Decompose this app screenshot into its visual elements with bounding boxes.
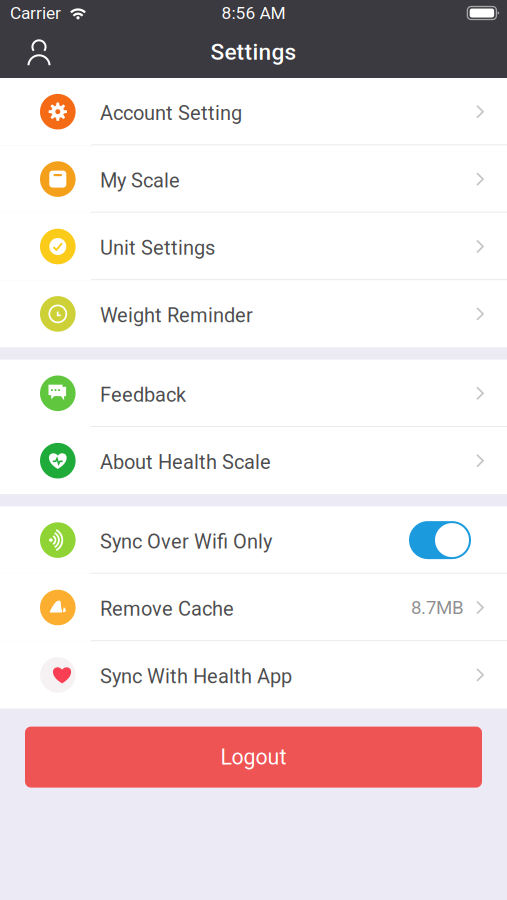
staticText: Sync With Health App [100,665,292,688]
button[interactable]: Profile [16,29,62,75]
button[interactable]: About Health Scale [0,427,507,494]
staticText: Feedback [100,383,186,406]
staticText: Logout [220,745,286,770]
staticText: Account Setting [100,101,242,125]
button[interactable]: Sync With Health App [0,641,507,709]
button[interactable]: My Scale [0,145,507,213]
staticText: Unit Settings [100,236,215,260]
staticText: Carrier [10,3,61,23]
staticText: 8:56 AM [221,3,285,23]
button[interactable]: Logout [25,727,482,788]
staticText: Remove Cache [100,597,234,621]
staticText: Weight Reminder [100,304,253,327]
button[interactable]: Weight Reminder [0,280,507,348]
staticText: About Health Scale [100,450,271,474]
button[interactable]: Unit Settings [0,213,507,280]
staticText: Settings [210,39,296,65]
staticText: Sync Over Wifi Only [100,530,272,553]
button[interactable]: Account Setting [0,78,507,145]
button[interactable]: Remove Cache [0,574,507,641]
button[interactable]: Feedback [0,360,507,427]
staticText: 8.7MB [411,597,464,618]
staticText: My Scale [100,169,180,192]
button[interactable]: Sync Over Wifi Only [0,506,507,574]
